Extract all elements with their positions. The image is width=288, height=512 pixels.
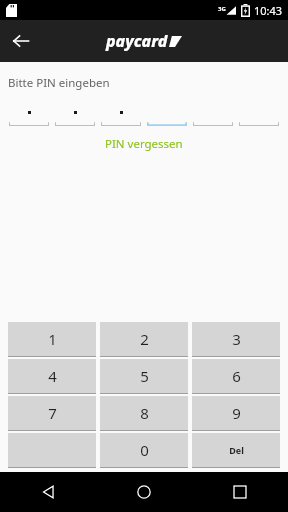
staticText: paycard bbox=[106, 30, 168, 52]
button[interactable]: Back bbox=[0, 472, 96, 512]
button[interactable]: PIN digit 2 bbox=[55, 106, 95, 126]
button[interactable]: 5 bbox=[100, 359, 188, 393]
staticText: 8 bbox=[140, 403, 149, 423]
button[interactable]: 7 bbox=[8, 396, 96, 430]
button[interactable]: PIN digit 4 bbox=[147, 106, 187, 126]
button[interactable]: 6 bbox=[192, 359, 280, 393]
staticText: 5 bbox=[140, 366, 149, 386]
button[interactable]: 9 bbox=[192, 396, 280, 430]
staticText: 1 bbox=[48, 329, 57, 349]
staticText: 7 bbox=[48, 403, 57, 423]
button[interactable]: 2 bbox=[100, 322, 188, 356]
button[interactable]: 8 bbox=[100, 396, 188, 430]
button[interactable]: Del bbox=[192, 433, 280, 467]
button[interactable]: Back bbox=[0, 20, 42, 62]
button[interactable]: PIN digit 5 bbox=[193, 106, 233, 126]
staticText: PIN vergessen bbox=[105, 136, 183, 152]
button[interactable]: PIN digit 6 bbox=[239, 106, 279, 126]
staticText: 3 bbox=[232, 329, 241, 349]
button[interactable]: 0 bbox=[100, 433, 188, 467]
button[interactable]: Home bbox=[96, 472, 192, 512]
button[interactable]: 4 bbox=[8, 359, 96, 393]
staticText: 9 bbox=[232, 403, 241, 423]
staticText: 2 bbox=[140, 329, 149, 349]
staticText: 3G bbox=[218, 5, 226, 13]
button[interactable]: PIN digit 1 bbox=[9, 106, 49, 126]
staticText: 4 bbox=[48, 366, 57, 386]
staticText: 10:43 bbox=[254, 3, 283, 18]
button[interactable]: PIN digit 3 bbox=[101, 106, 141, 126]
staticText: Del bbox=[229, 444, 244, 456]
staticText: Bitte PIN eingeben bbox=[8, 75, 110, 91]
button[interactable]: PIN vergessen bbox=[99, 134, 189, 154]
button[interactable]: Recent apps bbox=[192, 472, 288, 512]
staticText: 0 bbox=[140, 440, 149, 460]
staticText: 6 bbox=[232, 366, 241, 386]
button[interactable]: 1 bbox=[8, 322, 96, 356]
button[interactable]: 3 bbox=[192, 322, 280, 356]
